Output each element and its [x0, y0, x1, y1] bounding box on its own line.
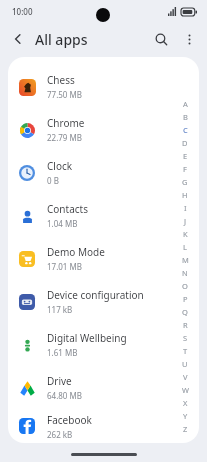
staticText: W	[182, 385, 189, 395]
staticText: 10:00	[12, 6, 33, 17]
staticText: P	[183, 294, 188, 304]
staticText: R	[183, 320, 188, 330]
button[interactable]: B	[176, 110, 194, 123]
button[interactable]: S	[176, 331, 194, 344]
staticText: M	[182, 255, 189, 265]
button[interactable]: Y	[176, 409, 194, 422]
button[interactable]: Digital Wellbeing	[8, 323, 199, 366]
button[interactable]: K	[176, 227, 194, 240]
staticText: Facebook	[47, 413, 92, 427]
staticText: Y	[183, 411, 188, 421]
staticText: K	[183, 229, 188, 239]
staticText: A	[183, 99, 188, 109]
staticText: 22.79 MB	[47, 132, 82, 143]
button[interactable]: F	[176, 162, 194, 175]
staticText: Q	[182, 307, 188, 317]
staticText: G	[182, 177, 188, 187]
button[interactable]: Search	[147, 25, 175, 53]
button[interactable]: V	[176, 370, 194, 383]
staticText: 17.01 MB	[47, 261, 82, 272]
staticText: Demo Mode	[47, 245, 105, 259]
staticText: Drive	[47, 374, 72, 388]
button[interactable]: Back	[4, 25, 32, 53]
button[interactable]: I	[176, 201, 194, 214]
staticText: D	[182, 138, 188, 148]
button[interactable]: A	[176, 97, 194, 110]
staticText: T	[183, 346, 188, 356]
button[interactable]: D	[176, 136, 194, 149]
button[interactable]: W	[176, 383, 194, 396]
button[interactable]: Q	[176, 305, 194, 318]
staticText: 1.61 MB	[47, 347, 78, 358]
staticText: 77.50 MB	[47, 89, 82, 100]
staticText: Chess	[47, 73, 75, 87]
button[interactable]: X	[176, 396, 194, 409]
button[interactable]: G	[176, 175, 194, 188]
staticText: Contacts	[47, 202, 88, 216]
button[interactable]: U	[176, 357, 194, 370]
button[interactable]: R	[176, 318, 194, 331]
button[interactable]: Clock	[8, 151, 199, 194]
staticText: Clock	[47, 159, 73, 173]
staticText: Digital Wellbeing	[47, 331, 127, 345]
button[interactable]: H	[176, 188, 194, 201]
staticText: L	[183, 242, 187, 252]
button[interactable]: Chrome	[8, 108, 199, 151]
button[interactable]: Contacts	[8, 194, 199, 237]
staticText: S	[183, 333, 188, 343]
button[interactable]: P	[176, 292, 194, 305]
staticText: H	[182, 190, 188, 200]
button[interactable]: Drive	[8, 366, 199, 409]
staticText: I	[184, 203, 187, 213]
button[interactable]: Z	[176, 422, 194, 435]
staticText: 1.04 MB	[47, 218, 78, 229]
staticText: F	[183, 164, 187, 174]
staticText: All apps	[35, 30, 88, 49]
button[interactable]: O	[176, 279, 194, 292]
button[interactable]: E	[176, 149, 194, 162]
button[interactable]: Facebook	[8, 409, 199, 443]
button[interactable]: Demo Mode	[8, 237, 199, 280]
button[interactable]: More options	[175, 25, 203, 53]
button[interactable]: Device configuration	[8, 280, 199, 323]
staticText: O	[182, 281, 188, 291]
staticText: 117 kB	[47, 304, 73, 315]
staticText: Chrome	[47, 116, 85, 130]
staticText: 262 kB	[47, 429, 73, 440]
staticText: 64.80 MB	[47, 390, 82, 401]
staticText: B	[183, 112, 188, 122]
button[interactable]: M	[176, 253, 194, 266]
button[interactable]: Chess	[8, 65, 199, 108]
staticText: C	[183, 125, 188, 135]
staticText: Z	[183, 424, 188, 434]
button[interactable]: T	[176, 344, 194, 357]
button[interactable]: N	[176, 266, 194, 279]
staticText: J	[184, 216, 187, 226]
staticText: V	[183, 372, 188, 382]
button[interactable]: C	[176, 123, 194, 136]
staticText: N	[182, 268, 188, 278]
button[interactable]: L	[176, 240, 194, 253]
staticText: E	[183, 151, 188, 161]
staticText: Device configuration	[47, 288, 144, 302]
staticText: U	[182, 359, 188, 369]
staticText: 0 B	[47, 175, 59, 186]
staticText: X	[183, 398, 188, 408]
button[interactable]: J	[176, 214, 194, 227]
